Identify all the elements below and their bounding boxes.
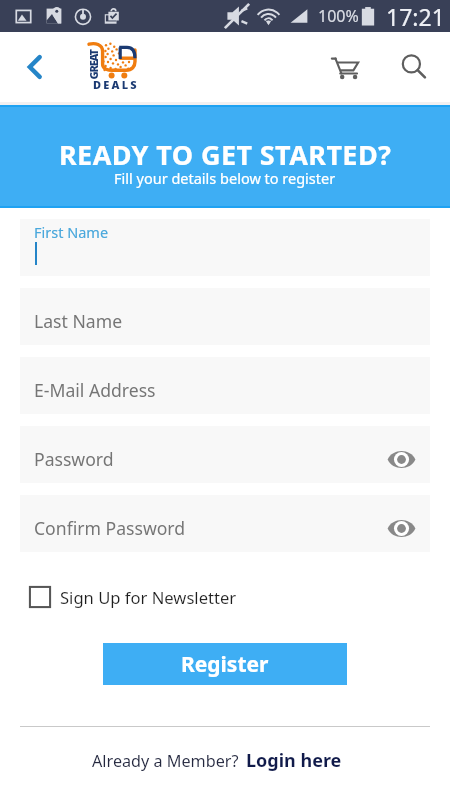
- staticText: Password: [34, 447, 114, 471]
- staticText: Login here: [246, 748, 342, 773]
- staticText: GREAT: [85, 49, 100, 79]
- button[interactable]: Login here: [246, 748, 342, 773]
- button[interactable]: Cart: [323, 45, 367, 89]
- button[interactable]: Sign Up for Newsletter: [28, 585, 237, 609]
- button[interactable]: Password: [20, 426, 430, 483]
- button[interactable]: Show password: [383, 441, 419, 477]
- staticText: Register: [181, 650, 269, 679]
- button[interactable]: First Name: [20, 219, 430, 276]
- staticText: 17:21: [386, 1, 445, 32]
- staticText: Sign Up for Newsletter: [60, 586, 237, 609]
- staticText: DEALS: [93, 77, 139, 92]
- staticText: 100%: [318, 5, 359, 27]
- staticText: E-Mail Address: [34, 378, 156, 402]
- button[interactable]: Register: [103, 643, 347, 685]
- staticText: Fill your details below to register: [114, 168, 336, 188]
- staticText: Last Name: [34, 309, 123, 333]
- button[interactable]: E-Mail Address: [20, 357, 430, 414]
- staticText: READY TO GET STARTED?: [59, 136, 392, 173]
- staticText: Already a Member?: [92, 750, 239, 772]
- button[interactable]: Last Name: [20, 288, 430, 345]
- button[interactable]: Show password: [383, 510, 419, 546]
- button[interactable]: Back: [13, 45, 57, 89]
- button[interactable]: Search: [392, 45, 436, 89]
- staticText: First Name: [34, 222, 109, 242]
- staticText: Confirm Password: [34, 516, 186, 540]
- button[interactable]: Confirm Password: [20, 495, 430, 552]
